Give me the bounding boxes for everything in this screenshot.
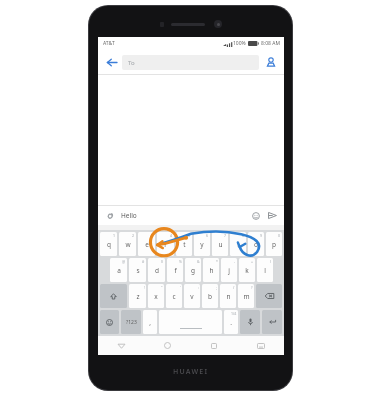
staticText: ?123 [126,319,137,326]
staticText: / [233,285,235,290]
button[interactable]: i [230,232,246,256]
button[interactable]: h [203,258,219,282]
button[interactable]: Recents [190,336,237,355]
button[interactable]: r [157,232,174,256]
staticText: v [190,292,194,301]
staticText: ! [144,285,145,290]
staticText: 2 [132,233,135,238]
staticText: z [136,292,140,301]
staticText: 100% [233,40,246,47]
staticText: @ [122,259,126,264]
staticText: l [264,266,266,275]
staticText: ' [180,285,181,290]
staticText: j [228,266,230,275]
button[interactable]: g [185,258,201,282]
button[interactable]: y [194,232,210,256]
staticText: 1/4 [231,311,237,316]
button[interactable]: e [138,232,155,256]
button[interactable]: p [266,232,282,256]
button[interactable]: Emoji [249,209,262,222]
staticText: ( [270,259,272,264]
button[interactable]: f [167,258,183,282]
staticText: e [145,240,149,249]
staticText: 3 [151,233,154,238]
button[interactable]: j [221,258,237,282]
button[interactable]: Voice input [240,310,260,334]
staticText: # [142,259,145,264]
staticText: m [243,292,250,301]
button[interactable]: Add contact [262,53,280,71]
staticText: 5 [188,233,191,238]
staticText: b [208,292,212,301]
button[interactable]: a [110,258,127,282]
staticText: d [155,266,159,275]
button[interactable]: c [166,284,182,308]
button[interactable]: k [239,258,255,282]
button[interactable]: l [257,258,273,282]
staticText: r [164,240,167,249]
staticText: " [161,285,163,290]
staticText: Hello [121,211,249,220]
staticText: To [128,59,135,67]
staticText: p [272,240,276,249]
button[interactable]: b [202,284,218,308]
staticText: 8 [242,233,245,238]
staticText: 4 [170,233,173,238]
button[interactable]: v [184,284,200,308]
button[interactable]: z [129,284,146,308]
button[interactable]: u [212,232,228,256]
staticText: x [154,292,158,301]
button[interactable]: To [122,55,259,70]
staticText: w [125,240,131,249]
staticText: t [183,240,186,249]
button[interactable]: m [238,284,254,308]
button[interactable]: . [224,310,238,334]
staticText: q [107,240,111,249]
button[interactable] [159,310,222,334]
button[interactable]: s [129,258,146,282]
staticText: - [234,259,236,264]
staticText: , [149,318,151,327]
staticText: $ [161,259,164,264]
button[interactable]: q [100,232,117,256]
button[interactable]: n [220,284,236,308]
staticText: ? [251,285,253,290]
staticText: u [218,240,223,249]
staticText: 1 [113,233,116,238]
staticText: k [245,266,249,275]
staticText: % [179,259,182,264]
button[interactable]: t [176,232,192,256]
button[interactable]: d [148,258,165,282]
staticText: y [200,240,204,249]
staticText: AT&T [103,40,115,47]
button[interactable]: Backspace [256,284,282,308]
staticText: g [191,266,195,275]
button[interactable]: w [119,232,136,256]
button[interactable]: Back [102,53,120,71]
button[interactable]: Send [266,209,279,222]
button[interactable]: Enter [262,310,282,334]
staticText: 9 [260,233,263,238]
button[interactable]: Shift [100,284,127,308]
button[interactable]: Home [144,336,190,355]
staticText: . [230,318,232,327]
staticText: h [209,266,214,275]
staticText: * [216,259,218,264]
staticText: HUAWEI [173,367,209,377]
staticText: i [237,240,239,249]
button[interactable]: Emoji [100,310,119,334]
button[interactable]: Symbols [121,310,141,334]
staticText: c [172,292,176,301]
staticText: & [197,259,200,264]
staticText: o [254,240,258,249]
button[interactable]: , [143,310,157,334]
staticText: + [251,259,254,264]
staticText: s [136,266,140,275]
button[interactable]: Hide keyboard [237,336,284,355]
button[interactable]: Back [98,336,144,355]
staticText: n [226,292,231,301]
button[interactable]: Attach [103,209,116,222]
staticText: 6 [206,233,209,238]
button[interactable]: x [148,284,164,308]
button[interactable]: o [248,232,264,256]
